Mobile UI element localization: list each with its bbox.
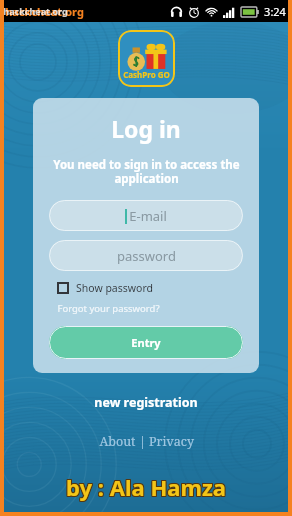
staticText: Entry bbox=[131, 335, 161, 350]
staticText: 3:24 bbox=[264, 4, 286, 19]
staticText: About bbox=[99, 433, 136, 450]
staticText: Show password bbox=[76, 281, 153, 295]
staticText: password bbox=[117, 247, 176, 265]
staticText: You need to sign in to access the applic… bbox=[53, 157, 240, 186]
staticText: Forgot your password? bbox=[57, 302, 160, 315]
button[interactable]: Entry bbox=[49, 326, 243, 359]
button[interactable]: E-mail bbox=[49, 200, 243, 231]
button[interactable]: Show password bbox=[57, 281, 249, 295]
staticText: hackcheat.org bbox=[5, 4, 84, 19]
button[interactable]: CashPro GO logo bbox=[118, 30, 175, 87]
staticText: | bbox=[139, 433, 146, 450]
staticText: by : Ala Hamza bbox=[66, 473, 226, 503]
button[interactable]: Privacy bbox=[146, 431, 197, 452]
staticText: by : Ala Hamza bbox=[66, 472, 226, 502]
button[interactable]: About bbox=[96, 431, 139, 452]
button[interactable]: new registration bbox=[90, 390, 202, 415]
staticText: by : Ala Hamza bbox=[66, 471, 226, 501]
staticText: CashPro GO bbox=[123, 69, 170, 80]
staticText: by : Ala Hamza bbox=[67, 471, 227, 501]
button[interactable]: Forgot your password? bbox=[57, 302, 160, 315]
staticText: hackcheat.org bbox=[3, 5, 68, 17]
staticText: Log in bbox=[111, 113, 181, 144]
staticText: new registration bbox=[94, 394, 198, 411]
staticText: by : Ala Hamza bbox=[65, 472, 225, 502]
staticText: by : Ala Hamza bbox=[65, 471, 225, 501]
staticText: Privacy bbox=[149, 433, 194, 450]
button[interactable]: password bbox=[49, 240, 243, 271]
staticText: by : Ala Hamza bbox=[67, 473, 227, 503]
staticText: by : Ala Hamza bbox=[65, 473, 225, 503]
staticText: by : Ala Hamza bbox=[67, 472, 227, 502]
staticText: E-mail bbox=[129, 207, 167, 225]
